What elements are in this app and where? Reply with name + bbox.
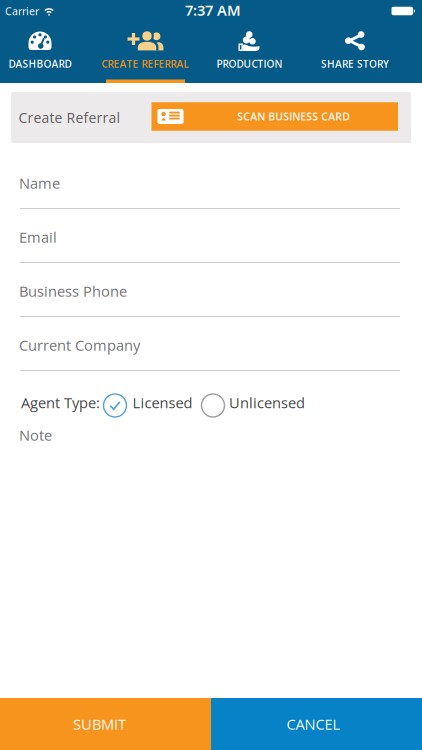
button[interactable]: SHARE STORY (288, 22, 422, 83)
staticText: Unlicensed (229, 392, 305, 412)
button[interactable]: PRODUCTION (211, 22, 288, 83)
button[interactable]: Email (0, 209, 422, 263)
button[interactable]: Current Company (0, 317, 422, 371)
staticText: 7:37 AM (185, 0, 241, 20)
button[interactable]: Name (0, 155, 422, 209)
button[interactable]: DASHBOARD (0, 22, 80, 83)
button[interactable]: Licensed (102, 391, 192, 416)
staticText: DASHBOARD (8, 57, 71, 71)
button[interactable]: CREATE REFERRAL (80, 22, 211, 83)
staticText: Note (19, 425, 52, 445)
staticText: SCAN BUSINESS CARD (237, 109, 350, 124)
staticText: SHARE STORY (321, 57, 389, 71)
button[interactable]: Unlicensed (200, 391, 305, 416)
staticText: Create Referral (18, 108, 120, 127)
staticText: CREATE REFERRAL (101, 57, 189, 71)
staticText: Agent Type: (21, 392, 100, 412)
button[interactable]: SUBMIT (0, 698, 211, 750)
staticText: Email (19, 227, 57, 247)
staticText: PRODUCTION (216, 57, 282, 71)
staticText: Business Phone (19, 281, 127, 301)
staticText: Licensed (132, 392, 192, 412)
button[interactable]: Note (0, 426, 422, 444)
staticText: SUBMIT (73, 714, 126, 734)
staticText: CANCEL (286, 714, 340, 734)
staticText: Carrier (5, 4, 39, 18)
staticText: Current Company (19, 335, 140, 355)
button[interactable]: Business Phone (0, 263, 422, 317)
button[interactable]: CANCEL (211, 698, 422, 750)
button[interactable]: SCAN BUSINESS CARD (151, 103, 398, 132)
staticText: Name (19, 173, 60, 193)
